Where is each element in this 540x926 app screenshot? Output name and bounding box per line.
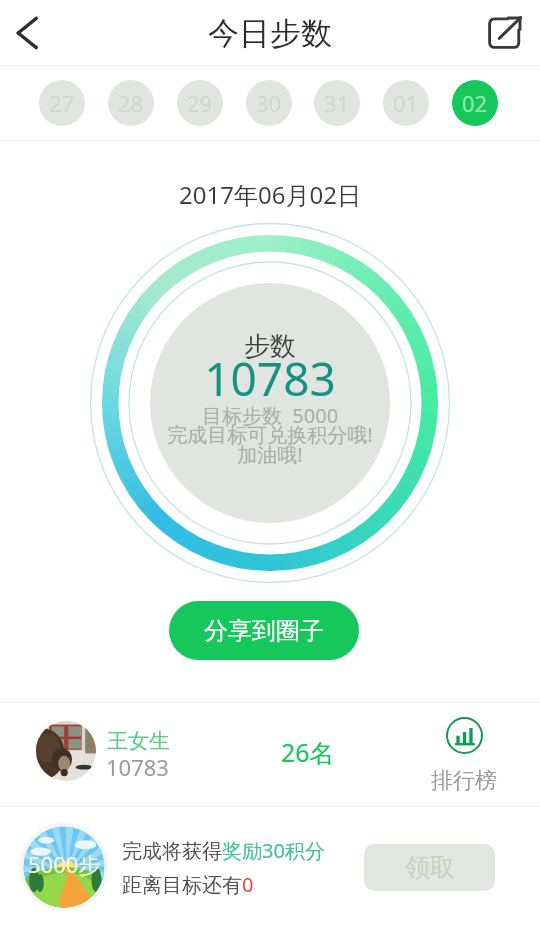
button[interactable]: 28 — [108, 80, 154, 126]
staticText: 分享到圈子 — [204, 616, 324, 646]
button[interactable]: 领取 — [364, 844, 495, 891]
staticText: 完成目标可兑换积分哦! — [87, 421, 453, 448]
staticText: 5000步 — [28, 849, 101, 879]
staticText: 完成将获得奖励30积分 — [122, 837, 325, 864]
staticText: 加油哦! — [87, 441, 453, 468]
staticText: 30 — [256, 88, 282, 118]
staticText: 29 — [187, 88, 213, 118]
button[interactable]: 01 — [383, 80, 429, 126]
staticText: 今日步数 — [208, 14, 332, 53]
button[interactable]: 分享到圈子 — [169, 601, 359, 660]
button[interactable]: Share — [478, 0, 540, 66]
staticText: 距离目标还有0 — [122, 871, 254, 898]
staticText: 02 — [462, 88, 488, 118]
staticText: 步数 — [87, 330, 453, 363]
staticText: 10783 — [87, 347, 453, 410]
button[interactable]: 29 — [177, 80, 223, 126]
staticText: 领取 — [405, 852, 455, 883]
staticText: 31 — [324, 88, 350, 118]
button[interactable]: 30 — [246, 80, 292, 126]
staticText: 王女生 — [107, 728, 170, 754]
staticText: 01 — [393, 88, 419, 118]
staticText: 目标步数 5000 — [87, 402, 453, 429]
button[interactable]: 排行榜 — [424, 717, 504, 795]
button[interactable]: 02 — [452, 80, 498, 126]
button[interactable]: 27 — [39, 80, 85, 126]
staticText: 2017年06月02日 — [0, 178, 540, 211]
button[interactable]: 31 — [314, 80, 360, 126]
button[interactable]: Back — [0, 0, 54, 66]
button[interactable]: 王女生 — [0, 689, 540, 807]
staticText: 27 — [49, 88, 75, 118]
staticText: 排行榜 — [431, 767, 497, 795]
staticText: 10783 — [106, 752, 169, 782]
staticText: 28 — [118, 88, 144, 118]
staticText: 26名 — [281, 735, 335, 769]
